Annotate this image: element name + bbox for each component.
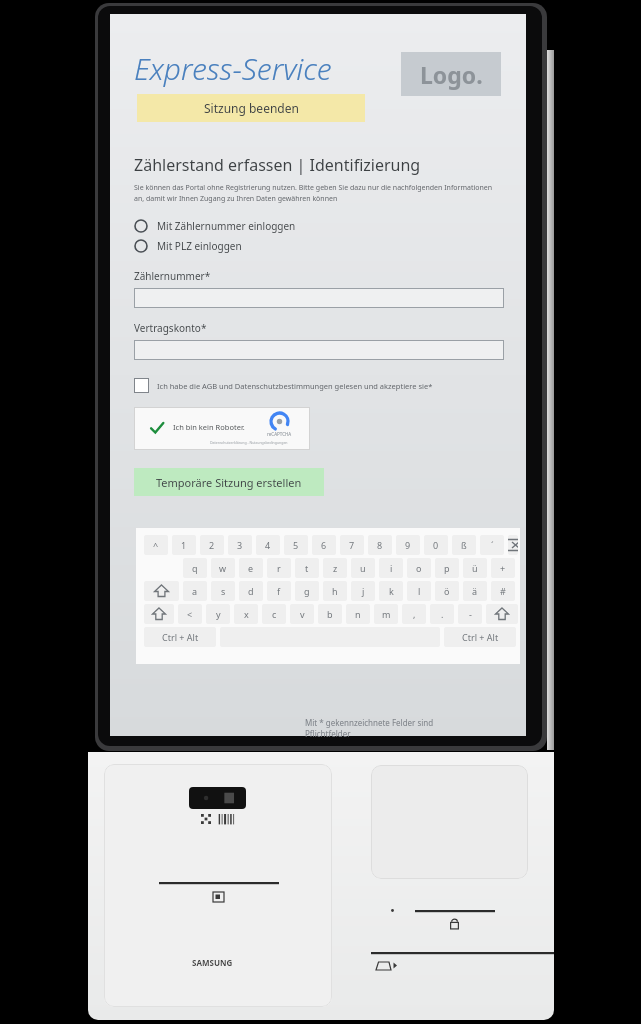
staticText: Ich bin kein Roboter. <box>173 422 245 432</box>
staticText: Logo. <box>420 59 483 90</box>
button[interactable]: 8 <box>368 535 392 555</box>
button[interactable]: y <box>206 604 230 624</box>
staticText: 5 <box>293 539 299 551</box>
other: Barcode scanner <box>189 787 246 809</box>
staticText: w <box>219 562 227 574</box>
staticText: 9 <box>405 539 411 551</box>
button[interactable]: Express-Service <box>134 48 332 89</box>
staticText: Mit * gekennzeichnete Felder sind Pflich… <box>305 717 434 739</box>
staticText: l <box>418 585 421 597</box>
staticText: 0 <box>433 539 439 551</box>
button[interactable]: Mit Zählernummer einloggen <box>134 217 296 235</box>
staticText: Zählernummer* <box>134 269 211 283</box>
staticText: z <box>333 562 338 574</box>
button[interactable]: t <box>295 558 319 578</box>
staticText: 8 <box>377 539 383 551</box>
button[interactable]: Shift <box>486 604 518 624</box>
staticText: ö <box>444 585 450 597</box>
staticText: j <box>362 585 365 597</box>
button[interactable]: j <box>351 581 375 601</box>
button[interactable]: r <box>267 558 291 578</box>
button[interactable]: s <box>211 581 235 601</box>
button[interactable]: 7 <box>340 535 364 555</box>
button[interactable]: d <box>239 581 263 601</box>
staticText: ä <box>472 585 478 597</box>
staticText: h <box>332 585 338 597</box>
button[interactable]: i <box>379 558 403 578</box>
staticText: reCAPTCHA <box>267 431 292 437</box>
button[interactable]: Ich habe die AGB und Datenschutzbestimmu… <box>134 378 433 393</box>
staticText: a <box>192 585 198 597</box>
button[interactable]: o <box>407 558 431 578</box>
button[interactable]: < <box>178 604 202 624</box>
button[interactable]: a <box>183 581 207 601</box>
button[interactable]: Temporäre Sitzung erstellen <box>134 468 324 496</box>
button[interactable]: g <box>295 581 319 601</box>
staticText: b <box>327 608 333 620</box>
staticText: Vertragskonto* <box>134 321 207 335</box>
button[interactable]: , <box>402 604 426 624</box>
staticText: Ctrl + Alt <box>162 631 199 643</box>
button[interactable]: Shift <box>144 604 174 624</box>
staticText: Temporäre Sitzung erstellen <box>156 475 302 490</box>
button[interactable]: 9 <box>396 535 420 555</box>
staticText: Mit Zählernummer einloggen <box>157 219 296 233</box>
staticText: e <box>248 562 254 574</box>
button[interactable]: 4 <box>256 535 280 555</box>
staticText: q <box>192 562 198 574</box>
button[interactable]: ü <box>463 558 487 578</box>
button[interactable]: + <box>491 558 515 578</box>
button[interactable]: 0 <box>424 535 448 555</box>
button[interactable]: u <box>351 558 375 578</box>
button[interactable]: 2 <box>200 535 224 555</box>
button[interactable]: 5 <box>284 535 308 555</box>
button[interactable]: 6 <box>312 535 336 555</box>
button[interactable]: f <box>267 581 291 601</box>
button[interactable]: Sitzung beenden <box>137 94 365 122</box>
button[interactable]: ´ <box>480 535 504 555</box>
button[interactable]: Ich bin kein Roboter. <box>134 407 310 450</box>
button[interactable]: n <box>346 604 370 624</box>
staticText: Ich habe die AGB und Datenschutzbestimmu… <box>157 381 433 391</box>
button[interactable] <box>134 288 504 308</box>
staticText: x <box>244 608 249 620</box>
button[interactable] <box>134 340 504 360</box>
button[interactable]: 3 <box>228 535 252 555</box>
button[interactable]: c <box>262 604 286 624</box>
button[interactable]: ^ <box>144 535 168 555</box>
staticText: Sitzung beenden <box>204 100 299 116</box>
button[interactable]: v <box>290 604 314 624</box>
button[interactable]: e <box>239 558 263 578</box>
button[interactable]: Caps lock <box>144 581 179 601</box>
button[interactable]: # <box>491 581 515 601</box>
button[interactable]: l <box>407 581 431 601</box>
button[interactable]: 1 <box>172 535 196 555</box>
button[interactable]: q <box>183 558 207 578</box>
staticText: y <box>216 608 221 620</box>
button[interactable]: Ctrl + Alt <box>144 627 216 647</box>
staticText: + <box>500 562 506 574</box>
button[interactable]: - <box>458 604 482 624</box>
button[interactable]: p <box>435 558 459 578</box>
button[interactable]: Backspace <box>508 535 518 555</box>
button[interactable]: Ctrl + Alt <box>444 627 516 647</box>
button[interactable]: h <box>323 581 347 601</box>
staticText: t <box>305 562 309 574</box>
staticText: Datenschutzerklärung - Nutzungsbedingung… <box>210 440 288 445</box>
button[interactable]: b <box>318 604 342 624</box>
button[interactable]: w <box>211 558 235 578</box>
button[interactable]: ä <box>463 581 487 601</box>
staticText: Zählerstand erfassen | Identifizierung <box>134 154 421 176</box>
button[interactable]: ö <box>435 581 459 601</box>
button[interactable]: ß <box>452 535 476 555</box>
button[interactable]: Logo <box>401 52 501 96</box>
button[interactable]: k <box>379 581 403 601</box>
button[interactable]: z <box>323 558 347 578</box>
staticText: o <box>416 562 422 574</box>
button[interactable]: x <box>234 604 258 624</box>
button[interactable]: Mit PLZ einloggen <box>134 237 242 255</box>
button[interactable]: . <box>430 604 454 624</box>
button[interactable]: m <box>374 604 398 624</box>
